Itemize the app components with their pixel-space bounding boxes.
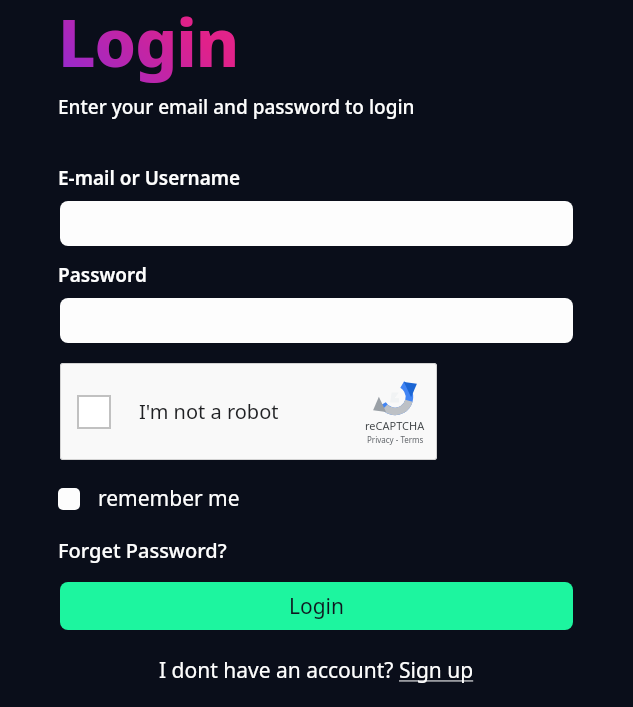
other: reCAPTCHA logo: [377, 379, 413, 415]
button[interactable]: [60, 298, 573, 343]
staticText: Login: [58, 0, 239, 86]
staticText: Login: [289, 592, 345, 621]
other: I'm not a robot checkbox: [77, 395, 111, 429]
button[interactable]: Forget Password?: [58, 537, 227, 564]
staticText: Enter your email and password to login: [58, 94, 415, 120]
staticText: E-mail or Username: [58, 165, 241, 191]
button[interactable]: remember me: [58, 482, 252, 515]
staticText: remember me: [98, 484, 240, 513]
staticText: Privacy - Terms: [367, 434, 424, 445]
staticText: I dont have an account?: [159, 656, 399, 685]
button[interactable]: Login: [60, 582, 573, 630]
button[interactable]: Sign up: [399, 656, 474, 685]
staticText: reCAPTCHA: [365, 418, 425, 433]
staticText: I'm not a robot: [139, 398, 279, 425]
button[interactable]: I'm not a robot checkbox: [60, 363, 437, 460]
button[interactable]: [60, 201, 573, 246]
staticText: Password: [58, 262, 147, 288]
